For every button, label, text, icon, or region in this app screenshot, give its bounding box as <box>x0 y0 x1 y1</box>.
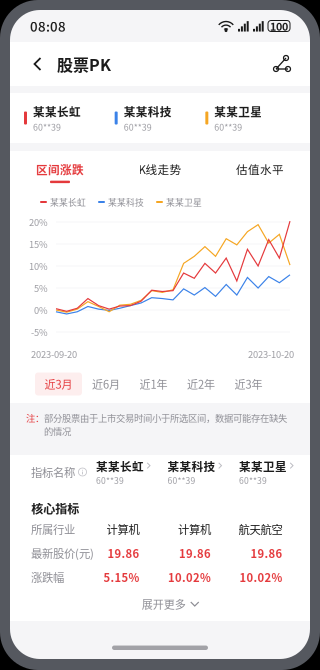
staticText: 19.86 <box>250 545 282 561</box>
staticText: 航天航空 <box>238 521 282 537</box>
staticText: K线走势 <box>138 161 181 178</box>
button[interactable]: 近6月 <box>82 372 129 395</box>
staticText: 计算机 <box>106 521 139 537</box>
staticText: 涨跌幅 <box>31 569 64 585</box>
staticText: 某某卫星 <box>214 103 262 119</box>
staticText: 某某科技 <box>108 196 144 208</box>
staticText: 15% <box>29 237 48 251</box>
button[interactable]: 某某长虹 <box>24 97 115 139</box>
staticText: 某某长虹 <box>33 103 81 119</box>
button[interactable]: 近2年 <box>177 372 224 395</box>
staticText: 最新股价(元) <box>31 545 94 561</box>
button[interactable]: K线走势 <box>110 153 210 191</box>
button[interactable]: 近3月 <box>35 372 82 395</box>
staticText: 某某科技 <box>124 103 172 119</box>
staticText: 某某长虹 <box>50 196 86 208</box>
button[interactable]: 展开更多 <box>31 589 310 619</box>
button[interactable]: 某某科技 <box>167 457 239 487</box>
staticText: 60**39 <box>33 120 61 133</box>
staticText: 60**39 <box>96 474 124 487</box>
staticText: 近6月 <box>92 376 120 392</box>
staticText: 60**39 <box>167 474 195 487</box>
button[interactable]: 某某卫星 <box>239 457 310 487</box>
staticText: 股票PK <box>57 52 111 76</box>
staticText: 近3年 <box>234 376 262 392</box>
staticText: 19.86 <box>107 545 139 561</box>
staticText: 5.15% <box>103 569 139 585</box>
button[interactable]: 某某卫星 <box>205 97 296 139</box>
staticText: 某某长虹 <box>96 457 144 474</box>
staticText: 近2年 <box>187 376 215 392</box>
staticText: 2023-10-20 <box>248 347 294 361</box>
staticText: 某某卫星 <box>239 457 287 474</box>
button[interactable]: 近1年 <box>130 372 177 395</box>
staticText: 区间涨跌 <box>36 161 84 178</box>
button[interactable]: 估值水平 <box>210 153 310 191</box>
staticText: 核心指标 <box>31 500 79 517</box>
staticText: 指标名称 <box>31 464 75 480</box>
staticText: 计算机 <box>178 521 211 537</box>
staticText: 10.02% <box>239 569 282 585</box>
staticText: 10% <box>29 259 48 273</box>
staticText: 60**39 <box>124 120 152 133</box>
staticText: 所属行业 <box>31 521 75 537</box>
button[interactable]: 近3年 <box>225 372 272 395</box>
button[interactable]: 某某科技 <box>115 97 205 139</box>
staticText: 近3月 <box>44 376 72 392</box>
staticText: 注： <box>26 411 44 424</box>
staticText: 08:08 <box>30 16 66 36</box>
staticText: 60**39 <box>239 474 267 487</box>
staticText: -5% <box>31 325 48 339</box>
button[interactable]: 某某长虹 <box>96 457 167 487</box>
staticText: 近1年 <box>139 376 167 392</box>
button[interactable]: Back <box>26 44 49 84</box>
staticText: 100 <box>270 18 288 34</box>
staticText: 展开更多 <box>142 596 186 612</box>
staticText: 估值水平 <box>236 161 284 178</box>
staticText: 2023-09-20 <box>31 347 77 361</box>
staticText: 20% <box>29 215 48 229</box>
staticText: 10.02% <box>168 569 211 585</box>
staticText: 某某卫星 <box>166 196 202 208</box>
staticText: 部分股票由于上市交易时间小于所选区间，数据可能存在缺失的情况 <box>44 411 287 438</box>
button[interactable]: Share <box>268 44 294 84</box>
staticText: 0% <box>34 303 48 317</box>
staticText: 19.86 <box>179 545 211 561</box>
staticText: 60**39 <box>214 120 242 133</box>
staticText: 5% <box>34 281 48 295</box>
staticText: 某某科技 <box>167 457 215 474</box>
button[interactable]: 区间涨跌 <box>10 153 110 191</box>
